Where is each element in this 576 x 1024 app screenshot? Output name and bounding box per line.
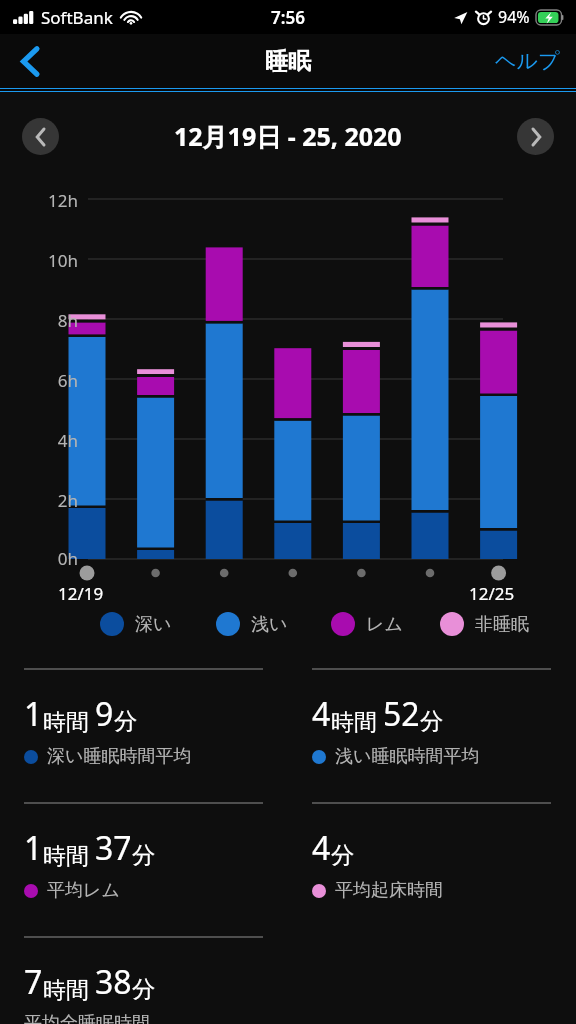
staticText: 分 <box>331 841 354 870</box>
button[interactable]: 1 <box>24 668 263 768</box>
button[interactable]: Next week <box>517 118 554 155</box>
button[interactable]: 7 <box>24 936 263 1024</box>
button[interactable]: 4 <box>312 802 551 902</box>
staticText: 平均レム <box>47 879 120 902</box>
button[interactable]: ヘルプ <box>495 48 560 74</box>
staticText: 4h <box>18 429 78 452</box>
staticText: 12/25 <box>469 582 515 605</box>
staticText: 時間 <box>43 973 95 1004</box>
staticText: 時間 <box>43 705 95 736</box>
staticText: 時間 <box>331 705 383 736</box>
staticText: 睡眠 <box>265 47 311 76</box>
staticText: 12/19 <box>58 582 104 605</box>
staticText: 12月19日 - 25, 2020 <box>174 119 402 153</box>
staticText: ヘルプ <box>495 48 560 74</box>
button[interactable]: 浅い <box>216 612 288 636</box>
staticText: 12h <box>18 189 78 212</box>
staticText: 7 <box>24 960 43 1004</box>
button[interactable]: 深い <box>100 612 172 636</box>
staticText: 分 <box>114 707 137 736</box>
staticText: 深い睡眠時間平均 <box>47 745 192 768</box>
staticText: 深い <box>135 613 172 636</box>
staticText: 9 <box>95 692 114 736</box>
staticText: 37 <box>95 826 132 870</box>
staticText: 浅い <box>251 613 288 636</box>
staticText: 10h <box>18 249 78 272</box>
staticText: 38 <box>95 960 132 1004</box>
staticText: 1 <box>24 692 43 736</box>
staticText: 52 <box>383 692 420 736</box>
button[interactable]: レム <box>331 612 403 636</box>
button[interactable]: 1 <box>24 802 263 902</box>
staticText: 94% <box>498 6 530 28</box>
staticText: 2h <box>18 489 78 512</box>
staticText: 0h <box>18 547 78 570</box>
staticText: 平均起床時間 <box>335 879 443 902</box>
staticText: 浅い睡眠時間平均 <box>335 745 480 768</box>
staticText: 時間 <box>43 839 95 870</box>
staticText: 平均全睡眠時間 <box>24 1012 150 1024</box>
staticText: 分 <box>132 841 155 870</box>
button[interactable]: 非睡眠 <box>440 612 529 636</box>
staticText: 4 <box>312 826 331 870</box>
staticText: 1 <box>24 826 43 870</box>
staticText: SoftBank <box>41 6 113 29</box>
staticText: 非睡眠 <box>475 613 529 636</box>
button[interactable]: Previous week <box>22 118 59 155</box>
staticText: 4 <box>312 692 331 736</box>
staticText: 分 <box>420 707 443 736</box>
staticText: 分 <box>132 975 155 1004</box>
staticText: 8h <box>18 309 78 332</box>
button[interactable]: 4 <box>312 668 551 768</box>
staticText: レム <box>366 613 403 636</box>
button[interactable]: Back <box>4 35 56 87</box>
staticText: 6h <box>18 369 78 392</box>
staticText: 7:56 <box>271 6 305 29</box>
